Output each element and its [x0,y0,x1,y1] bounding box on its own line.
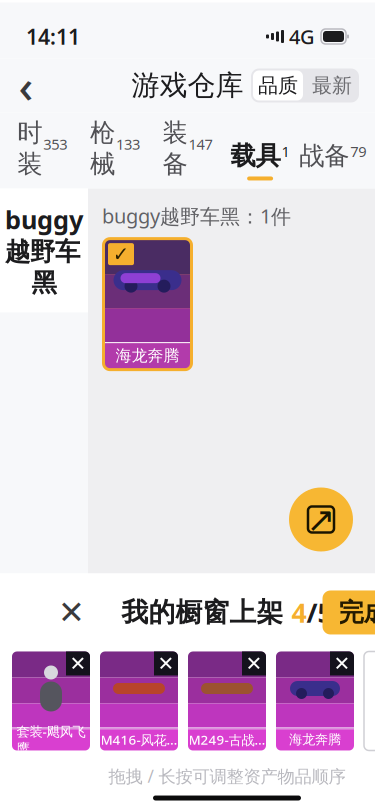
button[interactable]: 装备 [151,112,224,188]
staticText: 品质 [258,73,298,98]
staticText: 4G [289,23,315,50]
button[interactable]: 载具 [224,112,296,188]
staticText: 我的橱窗上架 [121,596,291,629]
button[interactable]: M249-古战… [188,651,266,750]
staticText: /5 [306,595,332,630]
button[interactable]: 品质 [251,68,305,102]
button[interactable]: 移除 套装-飓风飞鹰 [66,651,90,675]
staticText: 枪械 [90,117,115,180]
staticText: ‹ [18,55,33,116]
staticText: M416-风花… [100,731,177,748]
button[interactable]: 最新 [305,68,359,102]
staticText: ✕ [333,652,350,675]
staticText: 79 [350,142,366,161]
button[interactable]: M416-风花… [100,651,178,750]
staticText: 时装 [17,117,42,180]
button[interactable]: 分享 [289,487,353,551]
staticText: buggy越野车黑：1件 [102,202,291,229]
staticText: ✕ [245,652,262,675]
button[interactable]: 移除 M249-古战… [242,651,266,675]
staticText: 战备 [299,140,349,171]
button[interactable]: 移除 海龙奔腾 [330,651,354,675]
staticText: ✓ [112,243,129,265]
staticText: 最新 [312,73,352,98]
staticText: 完成 [338,597,375,628]
staticText: 黑 [31,267,56,298]
staticText: 1 [282,142,290,161]
button[interactable]: 套装-飓风飞鹰 [12,651,90,750]
staticText: ✕ [58,594,85,631]
button[interactable]: 添加物品 [364,651,375,750]
button[interactable]: 关闭 [47,588,95,636]
staticText: 装备 [162,117,187,180]
button[interactable]: 海龙奔腾 [276,651,354,750]
staticText: buggy越野车 [5,202,83,267]
button[interactable]: buggy越野车 [0,188,88,312]
staticText: 载具 [231,140,281,171]
staticText: 拖拽 / 长按可调整资产物品顺序 [108,764,345,787]
staticText: ✕ [69,652,86,675]
staticText: 147 [188,134,212,154]
staticText: ✕ [157,652,174,675]
staticText: 353 [43,134,67,154]
button[interactable]: 枪械 [79,112,151,188]
button[interactable]: 返回 [0,63,52,107]
staticText: 海龙奔腾 [289,731,341,748]
staticText: 133 [116,134,140,154]
button[interactable]: 移除 M416-风花… [154,651,178,675]
staticText: 游戏仓库 [131,68,243,103]
staticText: ↗ [306,500,335,539]
button[interactable]: 战备 [296,112,369,188]
button[interactable]: 完成 [322,590,375,634]
staticText: 4 [291,595,306,630]
staticText: 套装-飓风飞鹰 [16,722,85,756]
staticText: 海龙奔腾 [115,346,179,365]
staticText: M249-古战… [188,731,265,748]
button[interactable]: 海龙奔腾 [102,237,193,371]
button[interactable]: 时装 [6,112,79,188]
staticText: 14:11 [26,22,80,51]
